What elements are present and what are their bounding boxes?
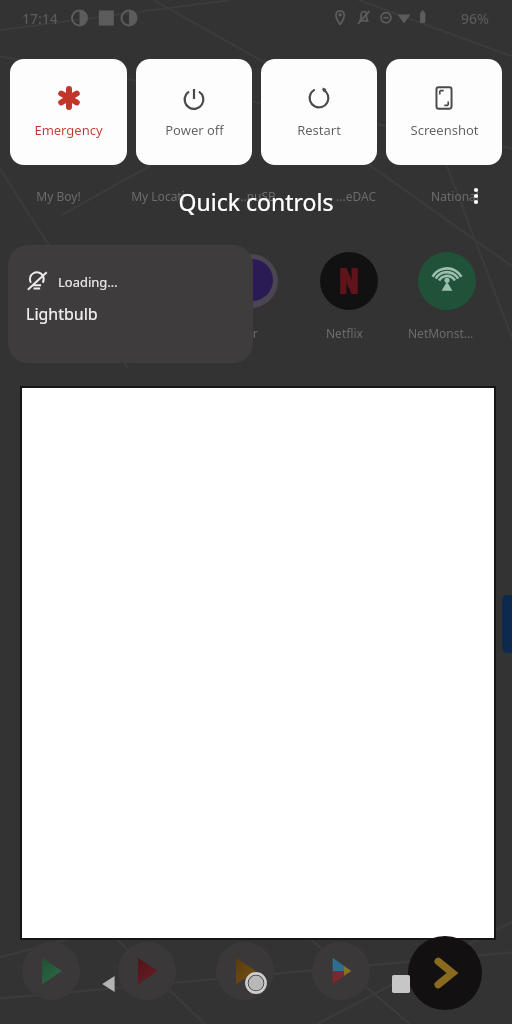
button[interactable]: Power off (136, 59, 252, 165)
button[interactable] (408, 936, 482, 1010)
staticText: My Locati (131, 188, 185, 204)
staticText: Emergency (34, 121, 103, 139)
staticText: 17:14 (22, 9, 58, 28)
staticText: NetMonst… (408, 325, 474, 341)
button[interactable]: Restart (261, 59, 377, 165)
button[interactable]: Recent apps (380, 963, 422, 1005)
button[interactable]: More options (458, 178, 494, 214)
staticText: Restart (297, 121, 341, 139)
button[interactable]: Home (234, 961, 278, 1005)
staticText: Netflix (326, 325, 363, 341)
staticText: ...puSB (237, 188, 276, 204)
staticText: ...eDAC (336, 188, 376, 204)
button[interactable] (312, 942, 370, 1000)
button[interactable]: Loading… (8, 245, 253, 363)
staticText: Loading… (58, 273, 118, 291)
button[interactable]: Screenshot (386, 59, 502, 165)
staticText: ctar (236, 325, 258, 341)
staticText: My Boy! (36, 188, 81, 204)
staticText: 96% (461, 9, 489, 28)
button[interactable]: Emergency (10, 59, 127, 165)
button[interactable] (216, 942, 274, 1000)
staticText: Power off (165, 121, 224, 139)
staticText: Screenshot (410, 121, 479, 139)
button[interactable]: Back (88, 963, 130, 1005)
staticText: National (431, 188, 479, 204)
button[interactable] (22, 942, 80, 1000)
staticText: Quick controls (0, 186, 512, 217)
button[interactable] (118, 942, 176, 1000)
staticText: Lightbulb (26, 303, 98, 325)
